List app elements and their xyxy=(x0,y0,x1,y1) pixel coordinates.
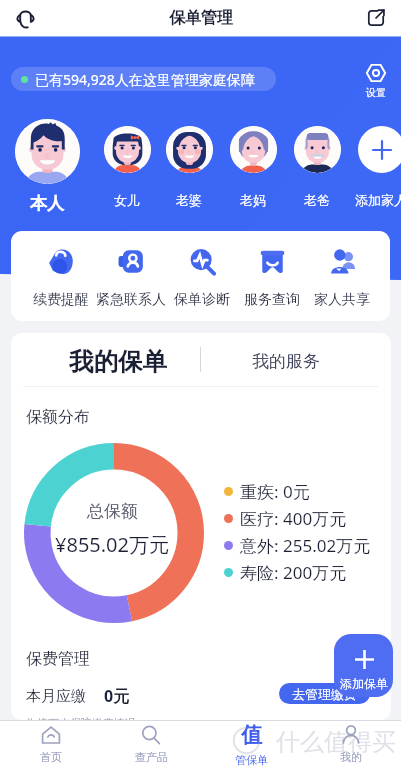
staticText: 去管理缴费 xyxy=(292,686,357,702)
button[interactable]: 我的 xyxy=(301,720,401,769)
button[interactable]: 老婆 xyxy=(154,126,224,208)
staticText: 医疗: 400万元 xyxy=(240,507,347,530)
button[interactable]: 家人共享 xyxy=(304,248,380,309)
button[interactable]: Share xyxy=(364,6,388,30)
button[interactable]: Customer service xyxy=(13,6,37,30)
staticText: 老爸 xyxy=(304,192,330,208)
button[interactable]: 续费提醒 xyxy=(23,248,99,309)
staticText: 为接下来保障缴费情况 xyxy=(26,716,136,720)
staticText: 添加保单 xyxy=(340,676,388,691)
button[interactable]: Settings xyxy=(360,64,392,99)
staticText: 值 xyxy=(241,722,262,748)
staticText: 寿险: 200万元 xyxy=(240,561,347,584)
staticText: 保单诊断 xyxy=(174,291,230,309)
staticText: 已有594,928人在这里管理家庭保障 xyxy=(35,70,255,89)
staticText: 女儿 xyxy=(114,192,140,208)
staticText: 添加家人 xyxy=(355,192,401,208)
staticText: 本月应缴 xyxy=(26,687,86,706)
staticText: 什么值得买 xyxy=(276,727,396,757)
button[interactable]: 老爸 xyxy=(282,126,352,208)
staticText: 家人共享 xyxy=(314,291,370,309)
button[interactable]: 添加保单 xyxy=(334,634,393,697)
button[interactable]: 老妈 xyxy=(218,126,288,208)
staticText: 我的 xyxy=(340,750,362,764)
staticText: 意外: 255.02万元 xyxy=(240,534,371,557)
button[interactable]: 保单诊断 xyxy=(164,248,240,309)
staticText: ¥855.02万元 xyxy=(55,531,169,558)
staticText: 保单管理 xyxy=(169,8,233,28)
staticText: 总保额 xyxy=(87,501,138,522)
staticText: 本人 xyxy=(30,193,64,214)
staticText: 续费提醒 xyxy=(33,291,89,309)
button[interactable]: 已有594,928人在这里管理家庭保障 xyxy=(11,67,276,91)
button[interactable]: 添加家人 xyxy=(346,126,401,208)
staticText: 老妈 xyxy=(240,192,266,208)
staticText: 服务查询 xyxy=(244,291,300,309)
button[interactable]: 我的保单 xyxy=(69,346,167,377)
staticText: 紧急联系人 xyxy=(96,291,166,309)
button[interactable]: 值 xyxy=(201,720,301,769)
staticText: 保费管理 xyxy=(26,649,90,669)
button[interactable]: 本人 xyxy=(12,119,82,214)
staticText: 0元 xyxy=(104,685,130,707)
button[interactable]: 紧急联系人 xyxy=(93,248,169,309)
staticText: 我的服务 xyxy=(252,351,320,372)
button[interactable]: 首页 xyxy=(0,720,101,769)
staticText: 老婆 xyxy=(176,192,202,208)
button[interactable]: 服务查询 xyxy=(234,248,310,309)
button[interactable]: 去管理缴费 xyxy=(279,683,370,704)
button[interactable]: 女儿 xyxy=(92,126,162,208)
staticText: 设置 xyxy=(366,86,386,99)
button[interactable]: 查产品 xyxy=(101,720,201,769)
staticText: 查产品 xyxy=(135,750,168,764)
staticText: 保额分布 xyxy=(26,407,90,427)
staticText: 重疾: 0元 xyxy=(240,480,310,503)
staticText: 我的保单 xyxy=(69,346,167,377)
staticText: 管保单 xyxy=(235,753,268,767)
button[interactable]: 我的服务 xyxy=(252,351,320,372)
staticText: 首页 xyxy=(40,750,62,764)
